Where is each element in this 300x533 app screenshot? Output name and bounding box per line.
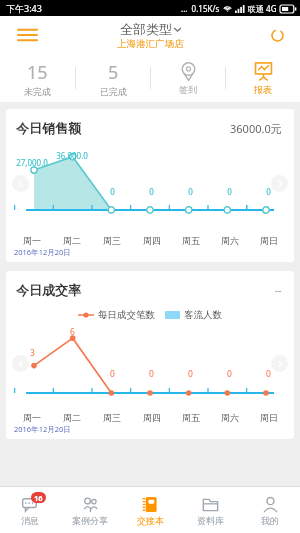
button[interactable]: Next	[271, 355, 288, 372]
staticText: --	[275, 283, 282, 297]
staticText: 周三	[103, 235, 121, 246]
staticText: 签到	[179, 84, 197, 95]
button[interactable]: 15	[0, 54, 75, 102]
button[interactable]: Refresh	[264, 22, 290, 48]
staticText: 36000.0元	[230, 121, 282, 136]
staticText: 客流人数	[184, 309, 222, 321]
staticText: 已完成	[100, 86, 127, 97]
staticText: 周六	[221, 412, 239, 423]
staticText: 6	[70, 326, 75, 338]
staticText: 0	[266, 186, 271, 197]
staticText: 案例分享	[72, 515, 108, 526]
staticText: 今日成交率	[16, 282, 81, 298]
staticText: ... 0.15K/s	[181, 3, 220, 14]
button[interactable]: 案例分享	[60, 487, 120, 533]
staticText: 0	[149, 186, 154, 197]
staticText: 我的	[261, 515, 279, 526]
staticText: 27,000.0	[16, 157, 48, 168]
button[interactable]: 资料库	[180, 487, 240, 533]
staticText: 2016年12月20日	[14, 247, 71, 257]
staticText: 周一	[23, 235, 41, 246]
button[interactable]: Menu	[12, 20, 42, 50]
button[interactable]: 签到	[151, 54, 225, 102]
staticText: 周四	[143, 235, 161, 246]
staticText: 周二	[63, 412, 81, 423]
staticText: 0	[227, 186, 232, 197]
button[interactable]: 报表	[226, 54, 300, 102]
button[interactable]: 5	[76, 54, 150, 102]
button[interactable]: Next	[271, 175, 288, 192]
staticText: 5	[108, 60, 119, 85]
staticText: 周一	[23, 412, 41, 423]
button[interactable]: 今日成交率	[6, 271, 294, 439]
staticText: 2016年12月20日	[14, 424, 71, 434]
staticText: 0	[227, 368, 232, 380]
staticText: 周三	[103, 412, 121, 423]
button[interactable]: 16	[0, 487, 60, 533]
staticText: 未完成	[24, 86, 51, 97]
staticText: 周六	[221, 235, 239, 246]
button[interactable]: Previous	[12, 175, 29, 192]
staticText: 0	[149, 368, 154, 380]
staticText: 资料库	[197, 515, 224, 526]
staticText: 消息	[21, 515, 39, 526]
staticText: 周五	[182, 235, 200, 246]
button[interactable]: Previous	[12, 355, 29, 372]
button[interactable]: 全部类型	[117, 21, 184, 50]
staticText: 36,000.0	[56, 150, 88, 161]
staticText: 下午3:43	[6, 2, 42, 14]
staticText: 上海港汇广场店	[117, 38, 184, 50]
staticText: 联通 4G	[248, 3, 277, 14]
staticText: 3	[30, 347, 35, 359]
staticText: 16	[34, 493, 43, 503]
staticText: 周二	[63, 235, 81, 246]
staticText: 周日	[260, 412, 278, 423]
staticText: 周日	[260, 235, 278, 246]
staticText: 今日销售额	[16, 120, 81, 136]
staticText: 15	[27, 60, 48, 85]
staticText: 周五	[182, 412, 200, 423]
staticText: 报表	[254, 84, 272, 95]
staticText: 0	[188, 186, 193, 197]
staticText: 0	[188, 368, 193, 380]
staticText: 0	[110, 368, 115, 380]
staticText: 每日成交笔数	[98, 309, 155, 321]
button[interactable]: 交接本	[120, 487, 180, 533]
button[interactable]: 今日销售额	[6, 109, 294, 262]
staticText: 0	[110, 186, 115, 197]
staticText: 0	[266, 368, 271, 380]
staticText: 全部类型	[120, 21, 172, 37]
button[interactable]: 我的	[240, 487, 300, 533]
staticText: 周四	[143, 412, 161, 423]
staticText: 交接本	[137, 515, 164, 526]
